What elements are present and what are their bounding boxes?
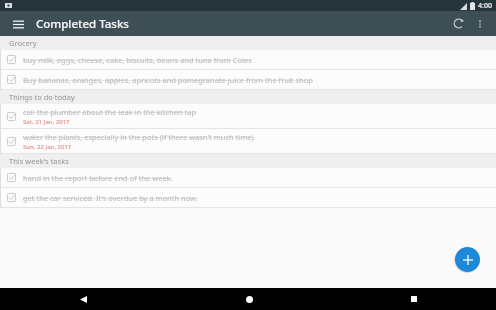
- button[interactable]: Back: [72, 288, 94, 310]
- button[interactable]: get the car serviced. It's overdue by a …: [0, 188, 496, 207]
- staticText: Completed Tasks: [36, 16, 129, 32]
- button[interactable]: Buy bananas, oranges, apples, apricots a…: [0, 70, 496, 89]
- staticText: Buy bananas, oranges, apples, apricots a…: [23, 75, 313, 85]
- button[interactable]: water the plants, especially in the pots…: [0, 129, 496, 153]
- staticText: buy milk, eggs, cheese, cake, biscuits, …: [23, 55, 252, 65]
- staticText: Sat, 21 Jan, 2017: [23, 118, 70, 126]
- button[interactable]: More options: [469, 13, 490, 34]
- button[interactable]: call the plumber about the leak in the k…: [0, 104, 496, 128]
- button[interactable]: Refresh: [448, 13, 469, 34]
- button[interactable]: Add task: [455, 247, 480, 272]
- staticText: This week's tasks: [9, 156, 69, 166]
- staticText: call the plumber about the leak in the k…: [23, 107, 197, 117]
- staticText: 4:00: [478, 1, 492, 11]
- staticText: Sun, 22 Jan, 2017: [23, 143, 72, 151]
- staticText: hand in the report before end of the wee…: [23, 173, 173, 183]
- staticText: Grocery: [9, 38, 37, 48]
- button[interactable]: Home: [238, 288, 260, 310]
- button[interactable]: Open navigation drawer: [8, 14, 28, 34]
- staticText: get the car serviced. It's overdue by a …: [23, 193, 198, 203]
- button[interactable]: buy milk, eggs, cheese, cake, biscuits, …: [0, 50, 496, 69]
- staticText: Things to do today: [9, 92, 75, 102]
- button[interactable]: hand in the report before end of the wee…: [0, 168, 496, 187]
- button[interactable]: Recent apps: [403, 288, 425, 310]
- staticText: water the plants, especially in the pots…: [23, 132, 254, 142]
